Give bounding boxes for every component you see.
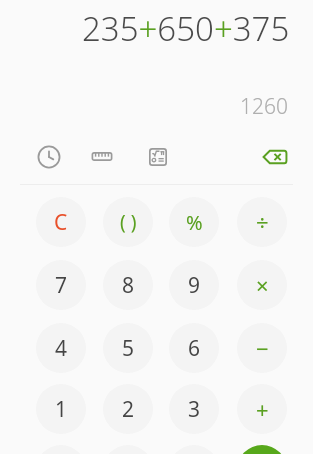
button[interactable]: 8 [103, 260, 153, 310]
button[interactable]: History [33, 141, 65, 173]
button[interactable]: 6 [169, 323, 219, 373]
button[interactable]: 5 [103, 323, 153, 373]
staticText: C [54, 208, 68, 237]
staticText: 1260 [240, 92, 288, 121]
button[interactable]: 4 [36, 323, 86, 373]
button[interactable]: Backspace [259, 141, 291, 173]
button[interactable]: = [237, 445, 287, 454]
staticText: ÷ [256, 207, 269, 237]
staticText: 7 [55, 271, 68, 300]
staticText: 3 [188, 395, 201, 424]
staticText: 1 [55, 395, 68, 424]
staticText: 6 [188, 334, 201, 363]
staticText: % [186, 209, 203, 236]
staticText: 2 [122, 395, 135, 424]
button[interactable]: % [169, 197, 219, 247]
button[interactable]: × [237, 260, 287, 310]
staticText: 9 [188, 271, 201, 300]
staticText: 5 [122, 334, 135, 363]
staticText: 4 [55, 334, 68, 363]
staticText: 8 [122, 271, 135, 300]
staticText: ( ) [120, 209, 137, 235]
staticText: + [256, 394, 269, 424]
button[interactable]: 2 [103, 384, 153, 434]
button[interactable]: 1 [36, 384, 86, 434]
staticText: 235+650+375 [82, 6, 290, 51]
button[interactable]: Scientific calculator [142, 141, 174, 173]
staticText: − [256, 333, 269, 363]
button[interactable]: Unit converter [86, 141, 118, 173]
button[interactable]: ( ) [103, 197, 153, 247]
button[interactable]: 9 [169, 260, 219, 310]
button[interactable]: − [237, 323, 287, 373]
button[interactable]: 3 [169, 384, 219, 434]
button[interactable]: 7 [36, 260, 86, 310]
staticText: × [256, 270, 269, 300]
button[interactable]: + [237, 384, 287, 434]
button[interactable]: C [36, 197, 86, 247]
button[interactable]: ÷ [237, 197, 287, 247]
